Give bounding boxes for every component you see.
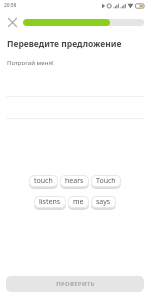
staticText: me	[73, 197, 84, 207]
staticText: hears	[65, 176, 84, 186]
staticText: Потрогай меня!	[7, 58, 54, 66]
staticText: touch	[34, 176, 53, 186]
staticText: listens	[39, 197, 61, 207]
button[interactable]: hears	[60, 175, 89, 187]
staticText: 20:58	[4, 2, 17, 9]
button[interactable]: Touch	[91, 175, 121, 187]
button[interactable]: ПРОВЕРИТЬ	[6, 276, 144, 292]
staticText: Touch	[96, 176, 116, 186]
button[interactable]: me	[68, 196, 89, 208]
staticText: ПРОВЕРИТЬ	[56, 280, 95, 288]
button[interactable]: touch	[29, 175, 58, 187]
staticText: Переведите предложение	[7, 38, 122, 50]
button[interactable]: Close	[5, 15, 19, 29]
staticText: says	[96, 197, 111, 207]
button[interactable]: says	[91, 196, 116, 208]
button[interactable]: listens	[34, 196, 66, 208]
